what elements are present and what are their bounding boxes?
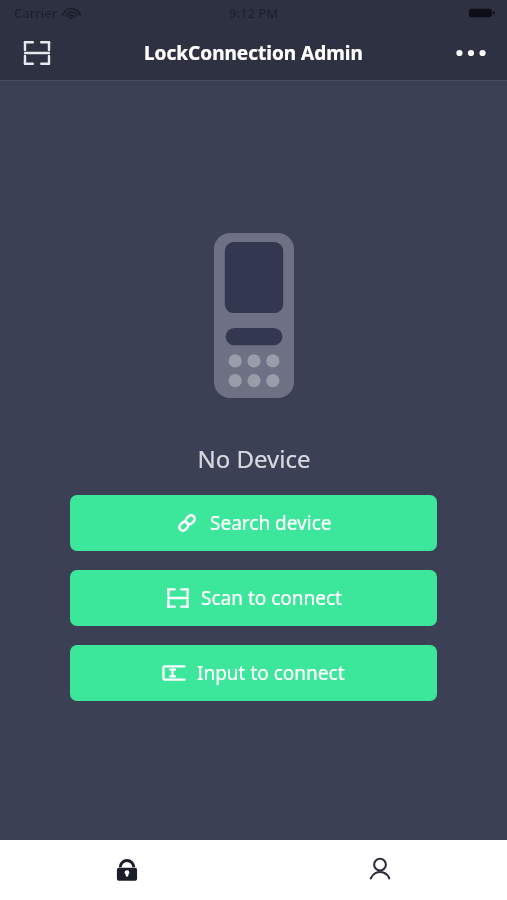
button[interactable]: More options (449, 31, 493, 75)
button[interactable]: Profile (253, 840, 507, 900)
staticText: LockConnection Admin (144, 40, 363, 66)
staticText: No Device (197, 442, 311, 475)
button[interactable]: Locks (0, 840, 253, 900)
button[interactable]: Scan to connect (70, 570, 437, 626)
staticText: Input to connect (197, 660, 345, 686)
staticText: Search device (210, 510, 332, 536)
button[interactable]: Scan (16, 32, 58, 74)
button[interactable]: Search device (70, 495, 437, 551)
button[interactable]: Input to connect (70, 645, 437, 701)
staticText: Scan to connect (201, 585, 342, 611)
staticText: 9:12 PM (229, 4, 279, 22)
staticText: Carrier (14, 4, 58, 22)
